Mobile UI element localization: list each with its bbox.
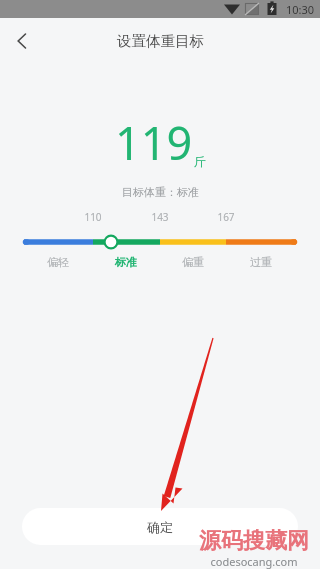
- staticText: 110: [84, 210, 102, 224]
- button[interactable]: 确定: [22, 508, 298, 545]
- staticText: 143: [151, 210, 169, 224]
- staticText: 斤: [194, 154, 206, 169]
- staticText: 167: [217, 210, 235, 224]
- staticText: 偏重: [182, 255, 204, 269]
- staticText: 目标体重：标准: [122, 185, 199, 199]
- button[interactable]: Back: [0, 19, 44, 63]
- staticText: 确定: [147, 519, 173, 535]
- staticText: 标准: [115, 255, 137, 269]
- staticText: 119: [115, 112, 193, 173]
- staticText: 设置体重目标: [117, 32, 204, 50]
- staticText: 10:30: [286, 2, 315, 17]
- staticText: codesocang.com: [210, 554, 298, 569]
- staticText: 源码搜藏网: [199, 527, 309, 555]
- staticText: 偏轻: [47, 255, 69, 269]
- staticText: 过重: [250, 255, 272, 269]
